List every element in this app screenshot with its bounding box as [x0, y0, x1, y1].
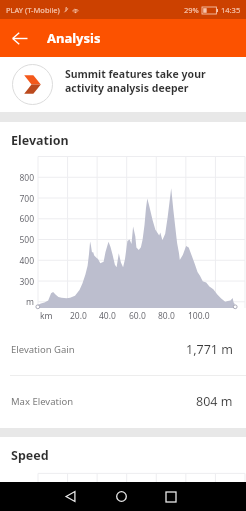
- staticText: 60.0: [129, 310, 146, 322]
- staticText: 700: [0, 193, 34, 205]
- staticText: 600: [0, 213, 34, 225]
- staticText: 400: [0, 255, 34, 267]
- staticText: 14:35: [221, 5, 241, 15]
- button[interactable]: Home: [101, 482, 141, 511]
- staticText: 800: [0, 172, 34, 184]
- staticText: Elevation Gain: [11, 343, 75, 356]
- staticText: Summit features take your: [65, 67, 206, 81]
- staticText: 1,771 m: [186, 341, 233, 358]
- staticText: Analysis: [47, 29, 101, 47]
- staticText: 500: [0, 234, 34, 246]
- staticText: Max Elevation: [11, 395, 73, 408]
- staticText: 100.0: [188, 310, 210, 322]
- staticText: Elevation: [11, 132, 69, 149]
- staticText: 300: [0, 276, 34, 288]
- staticText: 40.0: [99, 310, 116, 322]
- staticText: km: [40, 310, 53, 322]
- staticText: PLAY (T-Mobile): [6, 5, 60, 15]
- staticText: m: [0, 296, 34, 308]
- button[interactable]: Elevation Gain: [0, 323, 246, 375]
- button[interactable]: Back: [50, 482, 90, 511]
- staticText: 20.0: [70, 310, 87, 322]
- button[interactable]: Navigate up: [5, 23, 35, 53]
- staticText: Speed: [11, 447, 49, 464]
- staticText: 80.0: [158, 310, 175, 322]
- staticText: activity analysis deeper: [65, 81, 189, 95]
- button[interactable]: Max Elevation: [0, 375, 246, 428]
- button[interactable]: Summit features take your: [0, 57, 246, 112]
- button[interactable]: Recent apps: [151, 482, 191, 511]
- staticText: 804 m: [196, 393, 233, 410]
- staticText: 29%: [184, 5, 199, 15]
